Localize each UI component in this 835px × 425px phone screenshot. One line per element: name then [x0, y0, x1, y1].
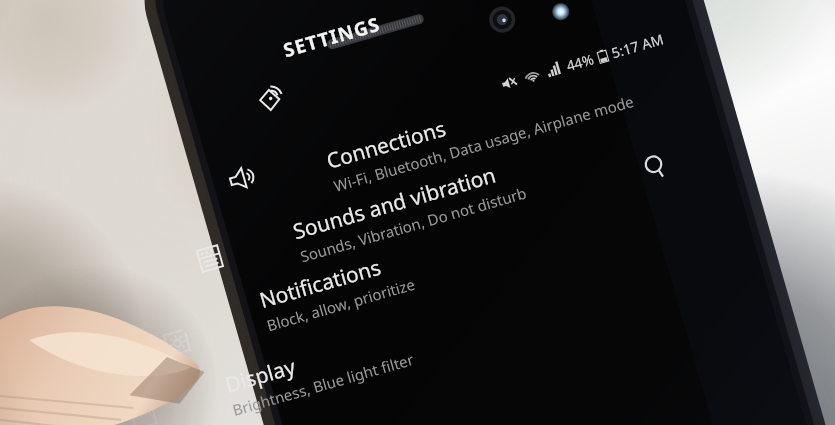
- staticText: SETTINGS: [280, 11, 384, 63]
- staticText: Brightness, Blue light filter: [230, 349, 416, 420]
- staticText: 44%: [564, 49, 596, 75]
- button[interactable]: Display: [222, 320, 416, 420]
- button[interactable]: Connections: [254, 82, 293, 121]
- button[interactable]: Display: [159, 324, 198, 363]
- button[interactable]: Search: [636, 146, 678, 188]
- staticText: Connections: [323, 114, 449, 176]
- staticText: 5:17 AM: [609, 29, 666, 62]
- button[interactable]: Wallpapers and themes: [127, 400, 164, 425]
- staticText: Wi-Fi, Bluetooth, Data usage, Airplane m…: [331, 91, 636, 196]
- staticText: Notifications: [256, 253, 384, 315]
- staticText: Sounds and vibration: [290, 160, 500, 246]
- button[interactable]: Connections: [323, 62, 636, 196]
- button[interactable]: Notifications: [192, 239, 231, 278]
- button[interactable]: Sounds and vibration: [224, 159, 263, 198]
- button[interactable]: Sounds and vibration: [290, 154, 529, 266]
- staticText: Block, allow, prioritize: [264, 274, 418, 335]
- staticText: Sounds, Vibration, Do not disturb: [298, 182, 529, 266]
- button[interactable]: Notifications: [256, 245, 418, 335]
- staticText: Display: [222, 352, 299, 400]
